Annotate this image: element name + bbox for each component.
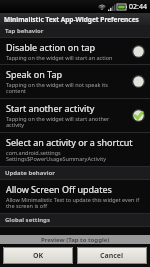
button[interactable]: Speak on Tap	[0, 65, 150, 98]
staticText: Minimalistic Text App-Widget Preferences	[4, 15, 139, 24]
staticText: Tapping on the widget will start another…	[6, 115, 128, 129]
button[interactable]: Preview (Tap to toggle)	[0, 235, 150, 244]
staticText: Tap behavior	[5, 27, 44, 35]
staticText: Disable action on tap	[6, 41, 95, 53]
staticText: Allow Screen Off updates	[6, 183, 112, 195]
staticText: Preview (Tap to toggle)	[41, 236, 110, 244]
staticText: Select an activity or a shortcut	[6, 136, 133, 148]
button[interactable]: Start another activity	[0, 99, 150, 132]
button[interactable]: Select an activity or a shortcut	[0, 133, 150, 166]
staticText: com.android.settings Settings$PowerUsage…	[6, 149, 106, 163]
button[interactable]: Allow Screen Off updates	[0, 180, 150, 213]
staticText: OK	[33, 251, 44, 261]
button[interactable]: OK	[3, 247, 73, 264]
staticText: Speak on Tap	[6, 68, 62, 80]
staticText: Global settings	[5, 216, 50, 224]
staticText: Tapping on the widget will start an acti…	[6, 54, 113, 61]
staticText: Start another activity	[6, 102, 95, 114]
staticText: Cancel	[100, 251, 124, 261]
staticText: 02:44	[129, 2, 147, 12]
button[interactable]: Cancel	[77, 247, 147, 264]
staticText: Update behavior	[5, 169, 55, 177]
button[interactable]: Disable action on tap	[0, 38, 150, 64]
staticText: Allow Minimalistic Text to update this w…	[6, 196, 145, 210]
staticText: Tapping on the widget will not speak its…	[6, 81, 128, 95]
